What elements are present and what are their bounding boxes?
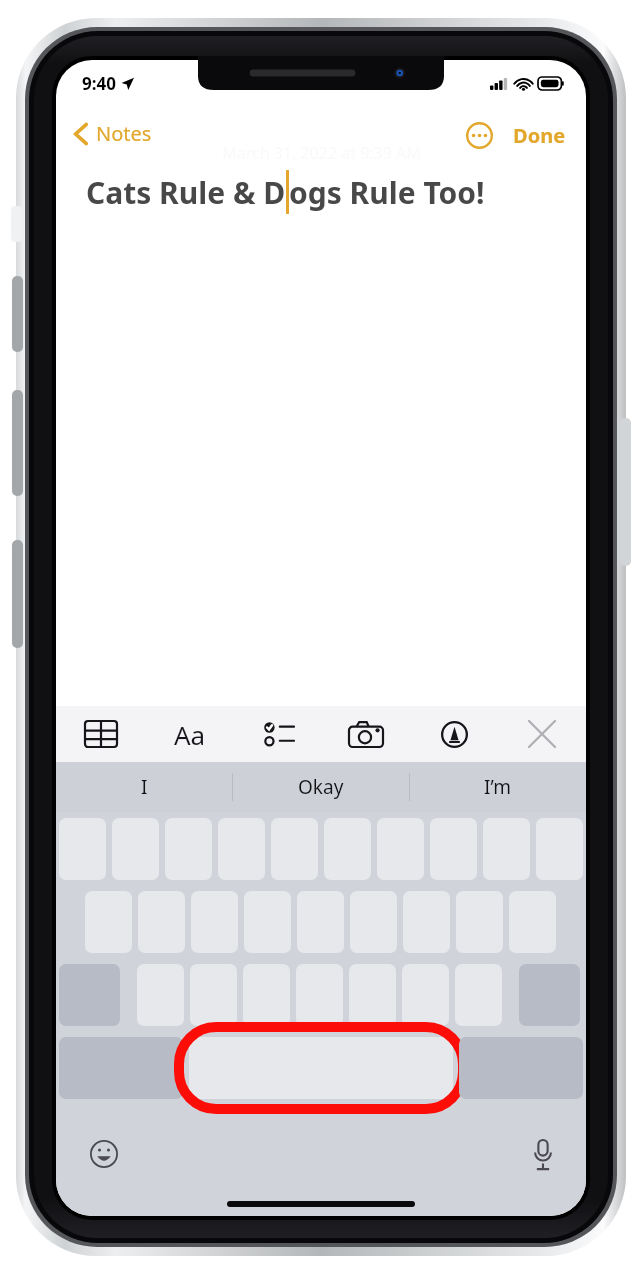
staticText: Notes: [96, 120, 152, 147]
button[interactable]: Checklist: [234, 706, 322, 762]
button[interactable]: Markup: [410, 706, 498, 762]
staticText: 9:40: [82, 72, 116, 95]
button[interactable]: Key: [296, 964, 343, 1026]
staticText: I: [141, 774, 148, 800]
button[interactable]: Numbers: [59, 1037, 183, 1099]
button[interactable]: Emoji keyboard: [86, 1136, 122, 1172]
button[interactable]: I’m: [409, 762, 586, 812]
button[interactable]: Insert table: [56, 706, 145, 762]
button[interactable]: Key: [190, 964, 237, 1026]
button[interactable]: Notes: [56, 116, 162, 151]
button[interactable]: Key: [402, 964, 449, 1026]
button[interactable]: I: [56, 762, 232, 812]
button[interactable]: Camera: [322, 706, 410, 762]
button[interactable]: More options: [460, 116, 499, 155]
button[interactable]: Dictation: [528, 1136, 558, 1174]
staticText: Done: [513, 122, 566, 149]
staticText: Okay: [298, 774, 344, 800]
button[interactable]: Key: [349, 964, 396, 1026]
staticText: Aa: [174, 717, 206, 752]
button[interactable]: Done: [507, 118, 586, 153]
button[interactable]: Text format: [145, 706, 234, 762]
button[interactable]: Key: [243, 964, 290, 1026]
button[interactable]: Close keyboard: [498, 706, 586, 762]
staticText: ogs Rule Too!: [289, 172, 485, 213]
button[interactable]: Return: [459, 1037, 583, 1099]
staticText: Cats Rule & D: [86, 172, 286, 213]
button[interactable]: Okay: [232, 762, 409, 812]
staticText: I’m: [484, 774, 511, 800]
button[interactable]: Space: [189, 1037, 453, 1099]
